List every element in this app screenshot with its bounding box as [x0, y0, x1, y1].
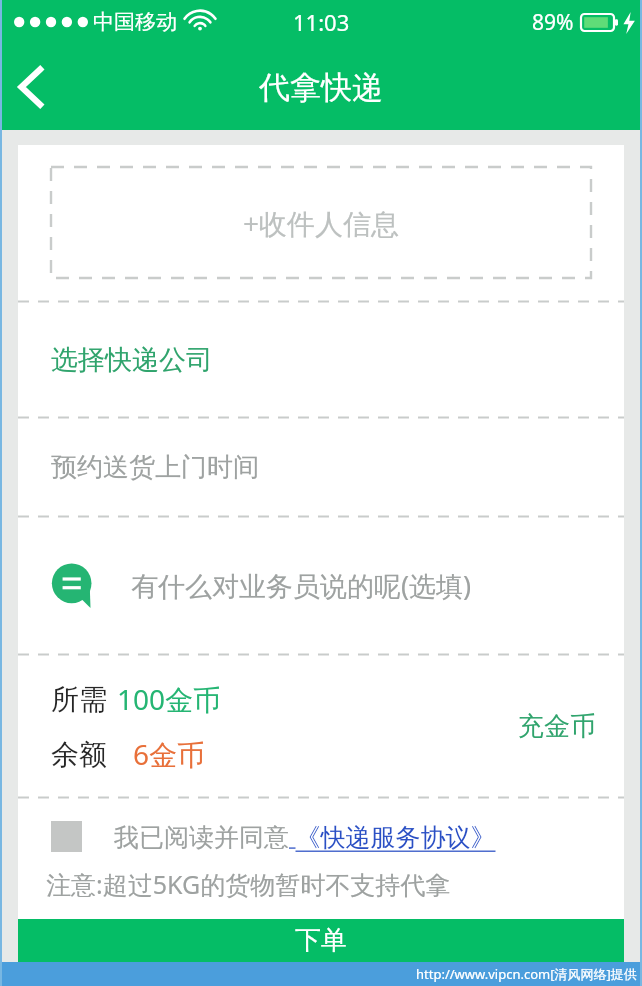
staticText: 有什么对业务员说的呢(选填): [131, 567, 472, 604]
button[interactable]: 预约送货上门时间: [51, 419, 624, 515]
staticText: 充金币: [518, 710, 596, 743]
button[interactable]: 选择快递公司: [51, 303, 624, 416]
staticText: 下单: [295, 924, 347, 957]
staticText: http://www.vipcn.com[清风网络]提供: [416, 965, 637, 983]
staticText: 6金币: [133, 735, 206, 773]
staticText: 代拿快递: [259, 68, 383, 107]
button[interactable]: 有什么对业务员说的呢(选填): [51, 518, 624, 653]
staticText: 11:03: [293, 7, 350, 37]
staticText: 所需: [51, 682, 107, 717]
staticText: +收件人信息: [243, 204, 400, 242]
staticText: 余额: [51, 737, 107, 772]
staticText: 注意:超过5KG的货物暂时不支持代拿: [46, 867, 451, 901]
button[interactable]: 返回: [0, 56, 62, 118]
staticText: 中国移动: [93, 9, 177, 35]
button[interactable]: 下单: [18, 919, 624, 962]
staticText: 选择快递公司: [51, 343, 213, 377]
staticText: 预约送货上门时间: [51, 451, 259, 484]
staticText: 100金币: [117, 680, 222, 718]
staticText: 我已阅读并同意 《快递服务协议》: [114, 819, 496, 853]
button[interactable]: 我已阅读并同意 《快递服务协议》: [51, 819, 624, 853]
staticText: 89%: [532, 8, 574, 37]
button[interactable]: 充金币: [512, 704, 602, 749]
button[interactable]: +收件人信息: [51, 167, 591, 278]
